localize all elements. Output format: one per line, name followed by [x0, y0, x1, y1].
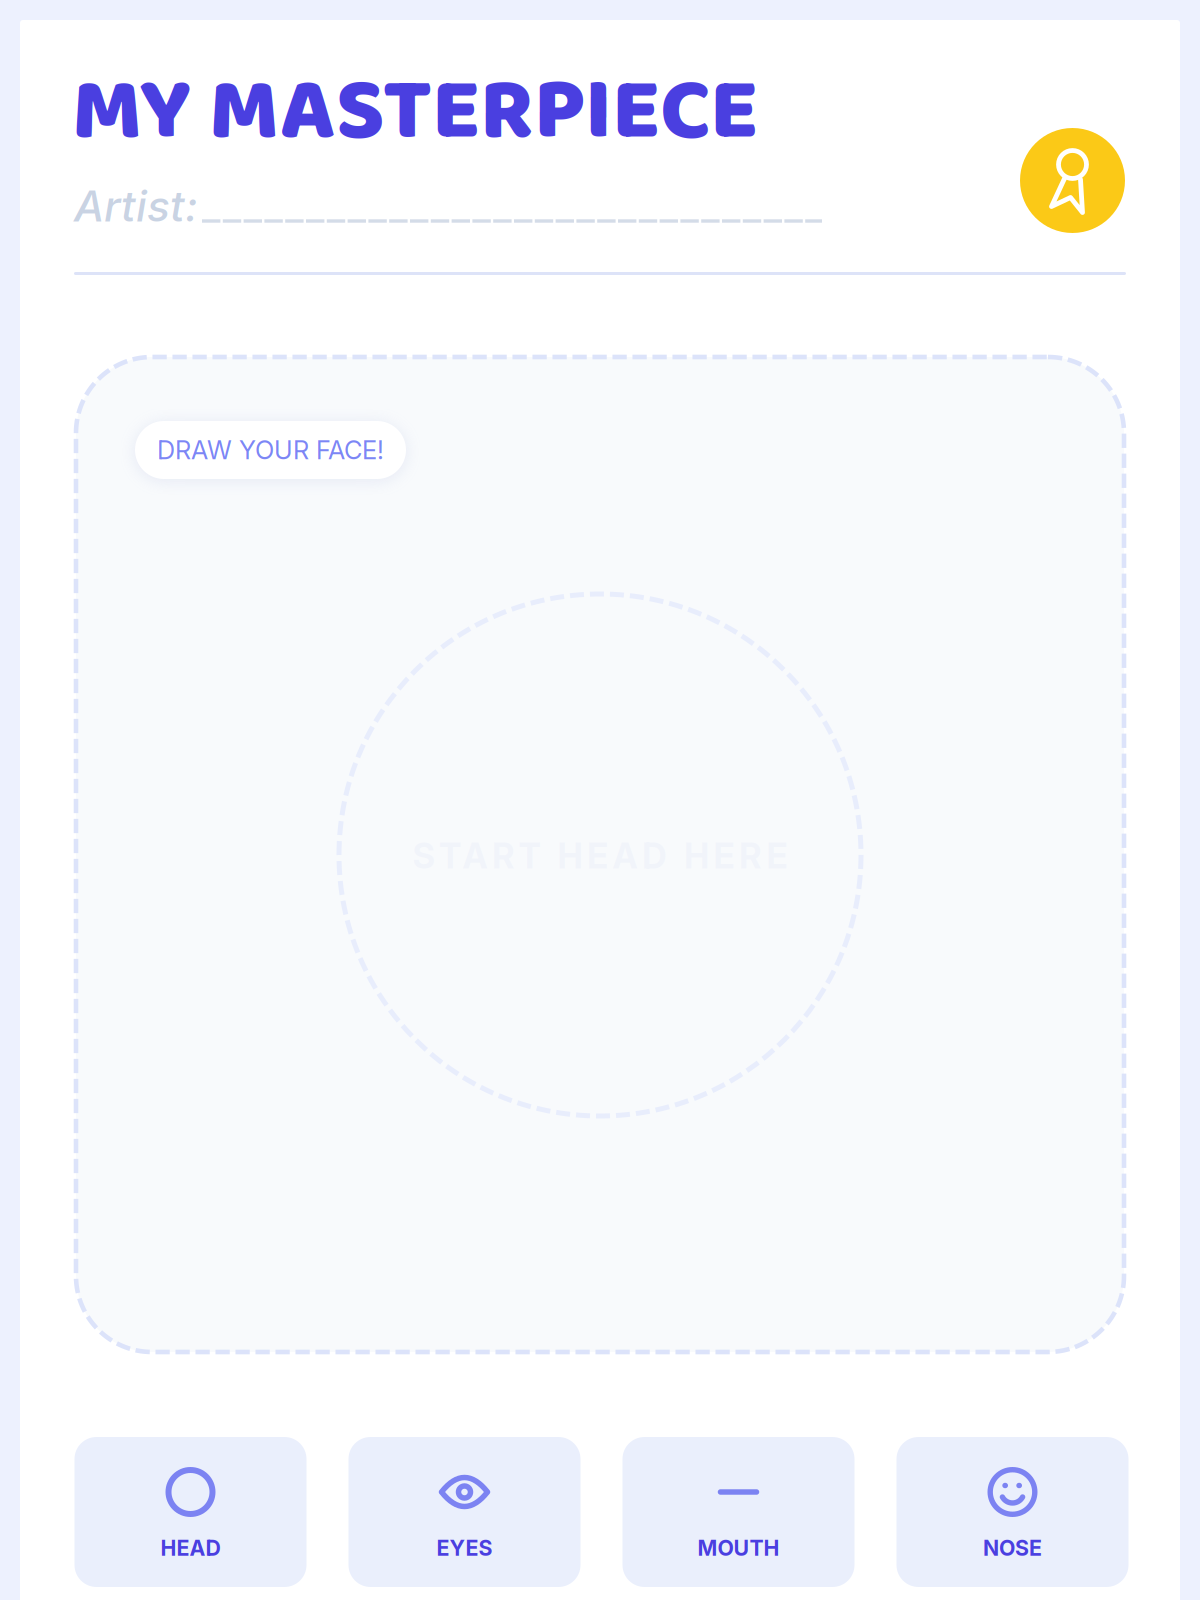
staticText: DRAW YOUR FACE!: [157, 435, 384, 465]
button[interactable]: NOSE: [896, 1437, 1128, 1587]
staticText: NOSE: [983, 1535, 1042, 1561]
staticText: MY MASTERPIECE: [72, 41, 758, 182]
staticText: Artist:: [74, 180, 198, 232]
button[interactable]: DRAW YOUR FACE!: [135, 421, 406, 479]
button[interactable]: Award: [1020, 128, 1125, 233]
staticText: EYES: [436, 1535, 492, 1561]
staticText: MOUTH: [697, 1535, 779, 1561]
button[interactable]: MOUTH: [622, 1437, 854, 1587]
button[interactable]: HEAD: [74, 1437, 306, 1587]
button[interactable]: EYES: [348, 1437, 580, 1587]
staticText: HEAD: [160, 1535, 220, 1561]
